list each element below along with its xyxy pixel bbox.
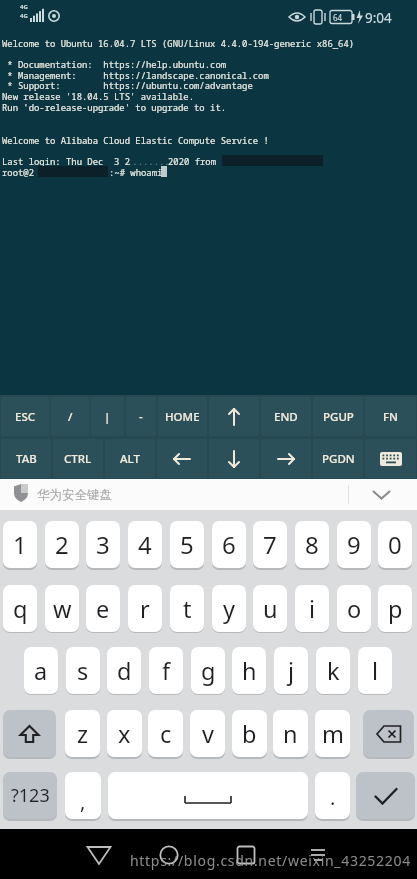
button[interactable]: 3: [86, 521, 120, 568]
staticText: 0: [388, 528, 402, 561]
button[interactable]: [157, 439, 207, 478]
staticText: d: [117, 655, 132, 687]
staticText: ALT: [120, 451, 140, 467]
button[interactable]: q: [3, 585, 37, 632]
button[interactable]: ALT: [105, 439, 155, 478]
button[interactable]: ESC: [1, 397, 49, 436]
button[interactable]: 9: [337, 521, 371, 568]
staticText: -: [139, 409, 143, 425]
button[interactable]: [3, 710, 56, 757]
staticText: e: [96, 593, 110, 625]
staticText: 4: [138, 528, 152, 561]
button[interactable]: [303, 839, 333, 869]
button[interactable]: TAB: [1, 439, 51, 478]
staticText: s: [77, 655, 89, 687]
button[interactable]: 8: [295, 521, 329, 568]
button[interactable]: r: [128, 585, 162, 632]
button[interactable]: HOME: [158, 397, 207, 436]
staticText: a: [34, 655, 48, 687]
button[interactable]: -: [126, 397, 156, 436]
button[interactable]: 6: [212, 521, 246, 568]
button[interactable]: c: [148, 710, 183, 757]
button[interactable]: PGDN: [313, 439, 363, 478]
button[interactable]: d: [107, 647, 141, 694]
button[interactable]: 5: [170, 521, 204, 568]
staticText: 2020 from 1: [168, 155, 227, 167]
button[interactable]: f: [149, 647, 183, 694]
button[interactable]: g: [191, 647, 225, 694]
button[interactable]: t: [170, 585, 204, 632]
button[interactable]: [231, 839, 261, 869]
staticText: Welcome to Ubuntu 16.04.7 LTS (GNU/Linux…: [2, 37, 355, 49]
button[interactable]: e: [86, 585, 120, 632]
staticText: New release '18.04.5 LTS' available.: [2, 90, 195, 102]
staticText: y: [223, 593, 235, 625]
button[interactable]: v: [190, 710, 225, 757]
button[interactable]: .: [315, 772, 350, 819]
staticText: https://blog.csdn.net/weixin_43252204: [130, 851, 411, 870]
button[interactable]: w: [45, 585, 79, 632]
button[interactable]: m: [315, 710, 350, 757]
button[interactable]: z: [65, 710, 100, 757]
staticText: CTRL: [64, 451, 92, 467]
staticText: PGDN: [322, 451, 355, 467]
button[interactable]: j: [274, 647, 308, 694]
button[interactable]: x: [107, 710, 142, 757]
staticText: .: [330, 784, 336, 811]
staticText: 9:04: [365, 9, 392, 27]
button[interactable]: [154, 839, 184, 869]
button[interactable]: [261, 439, 311, 478]
staticText: o: [347, 593, 362, 625]
button[interactable]: [365, 439, 416, 478]
staticText: 1: [13, 528, 27, 561]
button[interactable]: ?123: [3, 772, 57, 819]
staticText: ?123: [11, 783, 50, 808]
button[interactable]: l: [358, 647, 392, 694]
button[interactable]: 2: [45, 521, 79, 568]
button[interactable]: 4: [128, 521, 162, 568]
button[interactable]: [209, 439, 259, 478]
button[interactable]: n: [273, 710, 308, 757]
button[interactable]: h: [232, 647, 266, 694]
staticText: 7: [263, 528, 277, 561]
button[interactable]: 0: [378, 521, 412, 568]
button[interactable]: a: [24, 647, 58, 694]
button[interactable]: [363, 710, 414, 757]
staticText: /: [68, 409, 73, 425]
button[interactable]: s: [66, 647, 100, 694]
staticText: PGUP: [323, 409, 354, 425]
button[interactable]: b: [232, 710, 267, 757]
button[interactable]: [84, 839, 114, 869]
button[interactable]: 1: [3, 521, 37, 568]
staticText: r: [140, 593, 150, 625]
button[interactable]: [209, 397, 259, 436]
button[interactable]: y: [212, 585, 246, 632]
button[interactable]: 7: [253, 521, 287, 568]
button[interactable]: PGUP: [313, 397, 363, 436]
button[interactable]: /: [51, 397, 89, 436]
staticText: Welcome to Alibaba Cloud Elastic Compute…: [2, 134, 269, 146]
staticText: 5: [180, 528, 194, 561]
button[interactable]: FN: [365, 397, 416, 436]
button[interactable]: |: [91, 397, 124, 436]
button[interactable]: k: [316, 647, 350, 694]
button[interactable]: 华为安全键盘: [0, 479, 417, 510]
staticText: q: [13, 593, 28, 625]
staticText: ,: [80, 788, 86, 815]
button[interactable]: p: [378, 585, 412, 632]
staticText: n: [283, 718, 298, 750]
button[interactable]: CTRL: [53, 439, 103, 478]
button[interactable]: [108, 772, 308, 819]
staticText: 64: [333, 12, 343, 23]
button[interactable]: [356, 772, 415, 819]
staticText: x: [118, 718, 131, 750]
staticText: l: [372, 655, 379, 687]
button[interactable]: i: [295, 585, 329, 632]
button[interactable]: ,: [65, 772, 101, 819]
staticText: |: [104, 409, 111, 425]
staticText: Last login: Thu Dec 3 2: [2, 155, 131, 167]
button[interactable]: o: [337, 585, 371, 632]
button[interactable]: END: [261, 397, 311, 436]
button[interactable]: u: [253, 585, 287, 632]
staticText: v: [202, 718, 214, 750]
